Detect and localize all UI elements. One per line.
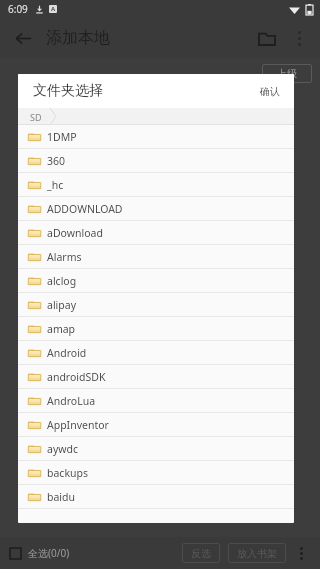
staticText: 放入书架: [237, 547, 277, 560]
staticText: 1DMP: [47, 130, 77, 144]
staticText: aywdc: [47, 442, 78, 456]
button[interactable]: 反选: [182, 543, 220, 563]
button[interactable]: 全选(0/0): [8, 542, 72, 564]
button[interactable]: AppInventor: [18, 413, 294, 436]
staticText: androidSDK: [47, 370, 106, 384]
button[interactable]: 放入书架: [228, 543, 286, 563]
staticText: baidu: [47, 490, 76, 504]
staticText: SD: [30, 111, 42, 123]
button[interactable]: baidu: [18, 485, 294, 508]
button[interactable]: 360: [18, 149, 294, 172]
button[interactable]: aywdc: [18, 437, 294, 460]
staticText: aDownload: [47, 226, 103, 240]
button[interactable]: Folder: [250, 21, 284, 55]
staticText: 添加本地: [46, 28, 110, 48]
staticText: backups: [47, 466, 88, 480]
staticText: Android: [47, 346, 87, 360]
staticText: 确认: [260, 85, 280, 98]
staticText: ADDOWNLOAD: [47, 202, 123, 216]
staticText: AppInventor: [47, 418, 109, 432]
button[interactable]: Alarms: [18, 245, 294, 268]
staticText: 文件夹选择: [33, 82, 103, 100]
staticText: alipay: [47, 298, 77, 312]
staticText: Alarms: [47, 250, 82, 264]
button[interactable]: ADDOWNLOAD: [18, 197, 294, 220]
button[interactable]: androidSDK: [18, 365, 294, 388]
button[interactable]: alipay: [18, 293, 294, 316]
button[interactable]: 1DMP: [18, 125, 294, 148]
button[interactable]: More options: [290, 542, 312, 564]
staticText: 6:09: [8, 2, 28, 16]
staticText: alclog: [47, 274, 77, 288]
staticText: 全选(0/0): [28, 546, 70, 560]
button[interactable]: SD: [28, 111, 44, 123]
staticText: AndroLua: [47, 394, 96, 408]
staticText: 上级: [277, 67, 297, 80]
button[interactable]: Android: [18, 341, 294, 364]
button[interactable]: aDownload: [18, 221, 294, 244]
button[interactable]: 确认: [254, 81, 286, 102]
staticText: amap: [47, 322, 76, 336]
button[interactable]: backups: [18, 461, 294, 484]
staticText: 360: [47, 154, 66, 168]
button[interactable]: 上级: [262, 64, 312, 83]
staticText: A: [51, 5, 56, 13]
staticText: 反选: [191, 547, 211, 560]
staticText: _hc: [47, 178, 64, 192]
button[interactable]: Back: [6, 21, 40, 55]
button[interactable]: amap: [18, 317, 294, 340]
button[interactable]: _hc: [18, 173, 294, 196]
button[interactable]: alclog: [18, 269, 294, 292]
button[interactable]: AndroLua: [18, 389, 294, 412]
